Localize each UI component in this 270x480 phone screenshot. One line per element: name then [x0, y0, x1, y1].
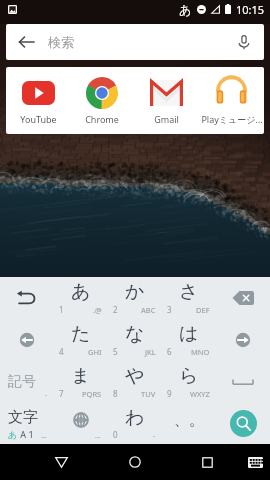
button[interactable]: ま [54, 361, 108, 403]
staticText: 文字 [8, 408, 38, 427]
button[interactable]: ら [162, 361, 216, 403]
staticText: 5 [113, 346, 118, 357]
button[interactable]: Search [216, 403, 270, 444]
button[interactable]: Delete [216, 277, 270, 319]
staticText: 。 [189, 411, 204, 430]
staticText: わ [125, 406, 145, 430]
staticText: Chrome [85, 113, 119, 125]
button[interactable]: さ [162, 277, 216, 319]
button[interactable]: は [162, 319, 216, 361]
staticText: あ [179, 2, 192, 17]
staticText: 10:15 [236, 2, 265, 17]
staticText: Playミュージ… [201, 113, 263, 125]
other: Back [18, 34, 34, 50]
staticText: 、 [174, 411, 189, 430]
staticText: 検索 [48, 34, 74, 50]
button[interactable]: Change keyboard [54, 403, 108, 444]
button[interactable]: 、 [162, 403, 216, 444]
staticText: ... [41, 431, 47, 441]
staticText: . [45, 389, 47, 399]
other: Move right [234, 331, 252, 349]
staticText: か [125, 280, 145, 304]
staticText: PQRS [82, 389, 102, 399]
staticText: .@ [93, 305, 102, 315]
staticText: DEF [196, 305, 210, 315]
button[interactable]: Back [41, 444, 81, 480]
button[interactable]: YouTube [6, 67, 70, 134]
button[interactable]: Recents [187, 444, 227, 480]
other: Change keyboard [73, 412, 89, 428]
staticText: ら [179, 364, 199, 388]
button[interactable]: わ [108, 403, 162, 444]
staticText: GHI [88, 347, 102, 357]
button[interactable]: 文字 [0, 403, 54, 444]
staticText: ... [95, 431, 101, 441]
staticText: 記号 [8, 373, 36, 391]
button[interactable]: Home [115, 444, 155, 480]
button[interactable]: Gmail [134, 67, 199, 134]
staticText: 7 [59, 388, 64, 399]
button[interactable]: Move left [0, 319, 54, 361]
staticText: な [125, 322, 145, 346]
button[interactable]: Playミュージ… [199, 67, 264, 134]
staticText: A 1 [18, 428, 34, 440]
other: Space [232, 377, 254, 387]
staticText: ま [71, 364, 91, 388]
button[interactable]: 記号 [0, 361, 54, 403]
staticText: 2 [113, 304, 118, 315]
staticText: 6 [167, 346, 172, 357]
button[interactable]: Space [216, 361, 270, 403]
staticText: MNO [191, 347, 210, 357]
staticText: 9 [167, 388, 172, 399]
button[interactable]: や [108, 361, 162, 403]
staticText: TUV [141, 389, 156, 399]
staticText: あ [8, 429, 18, 440]
staticText: 1 [59, 304, 64, 315]
staticText: さ [179, 280, 199, 304]
button[interactable]: Switch keyboard [240, 444, 270, 480]
other: Move left [18, 331, 36, 349]
staticText: は [179, 322, 199, 346]
button[interactable]: Move right [216, 319, 270, 361]
staticText: た [71, 322, 91, 346]
other: Voice search [236, 34, 252, 50]
button[interactable]: た [54, 319, 108, 361]
staticText: JKL [145, 347, 156, 357]
button[interactable]: か [108, 277, 162, 319]
staticText: 3 [167, 304, 172, 315]
button[interactable]: あ [54, 277, 108, 319]
staticText: WXYZ [190, 389, 210, 399]
button[interactable]: Undo [0, 277, 54, 319]
staticText: - [153, 430, 156, 440]
button[interactable]: Chrome [70, 67, 134, 134]
button[interactable]: な [108, 319, 162, 361]
staticText: YouTube [20, 113, 57, 125]
staticText: あ [71, 280, 91, 304]
staticText: や [125, 364, 145, 388]
staticText: ABC [141, 305, 156, 315]
staticText: 4 [59, 346, 64, 357]
button[interactable]: Back [6, 24, 264, 60]
staticText: 0 [113, 429, 118, 440]
button[interactable]: Search [230, 410, 257, 437]
staticText: Gmail [154, 113, 179, 125]
other: Delete [232, 291, 254, 305]
staticText: 8 [113, 388, 118, 399]
other: Undo [16, 287, 38, 309]
